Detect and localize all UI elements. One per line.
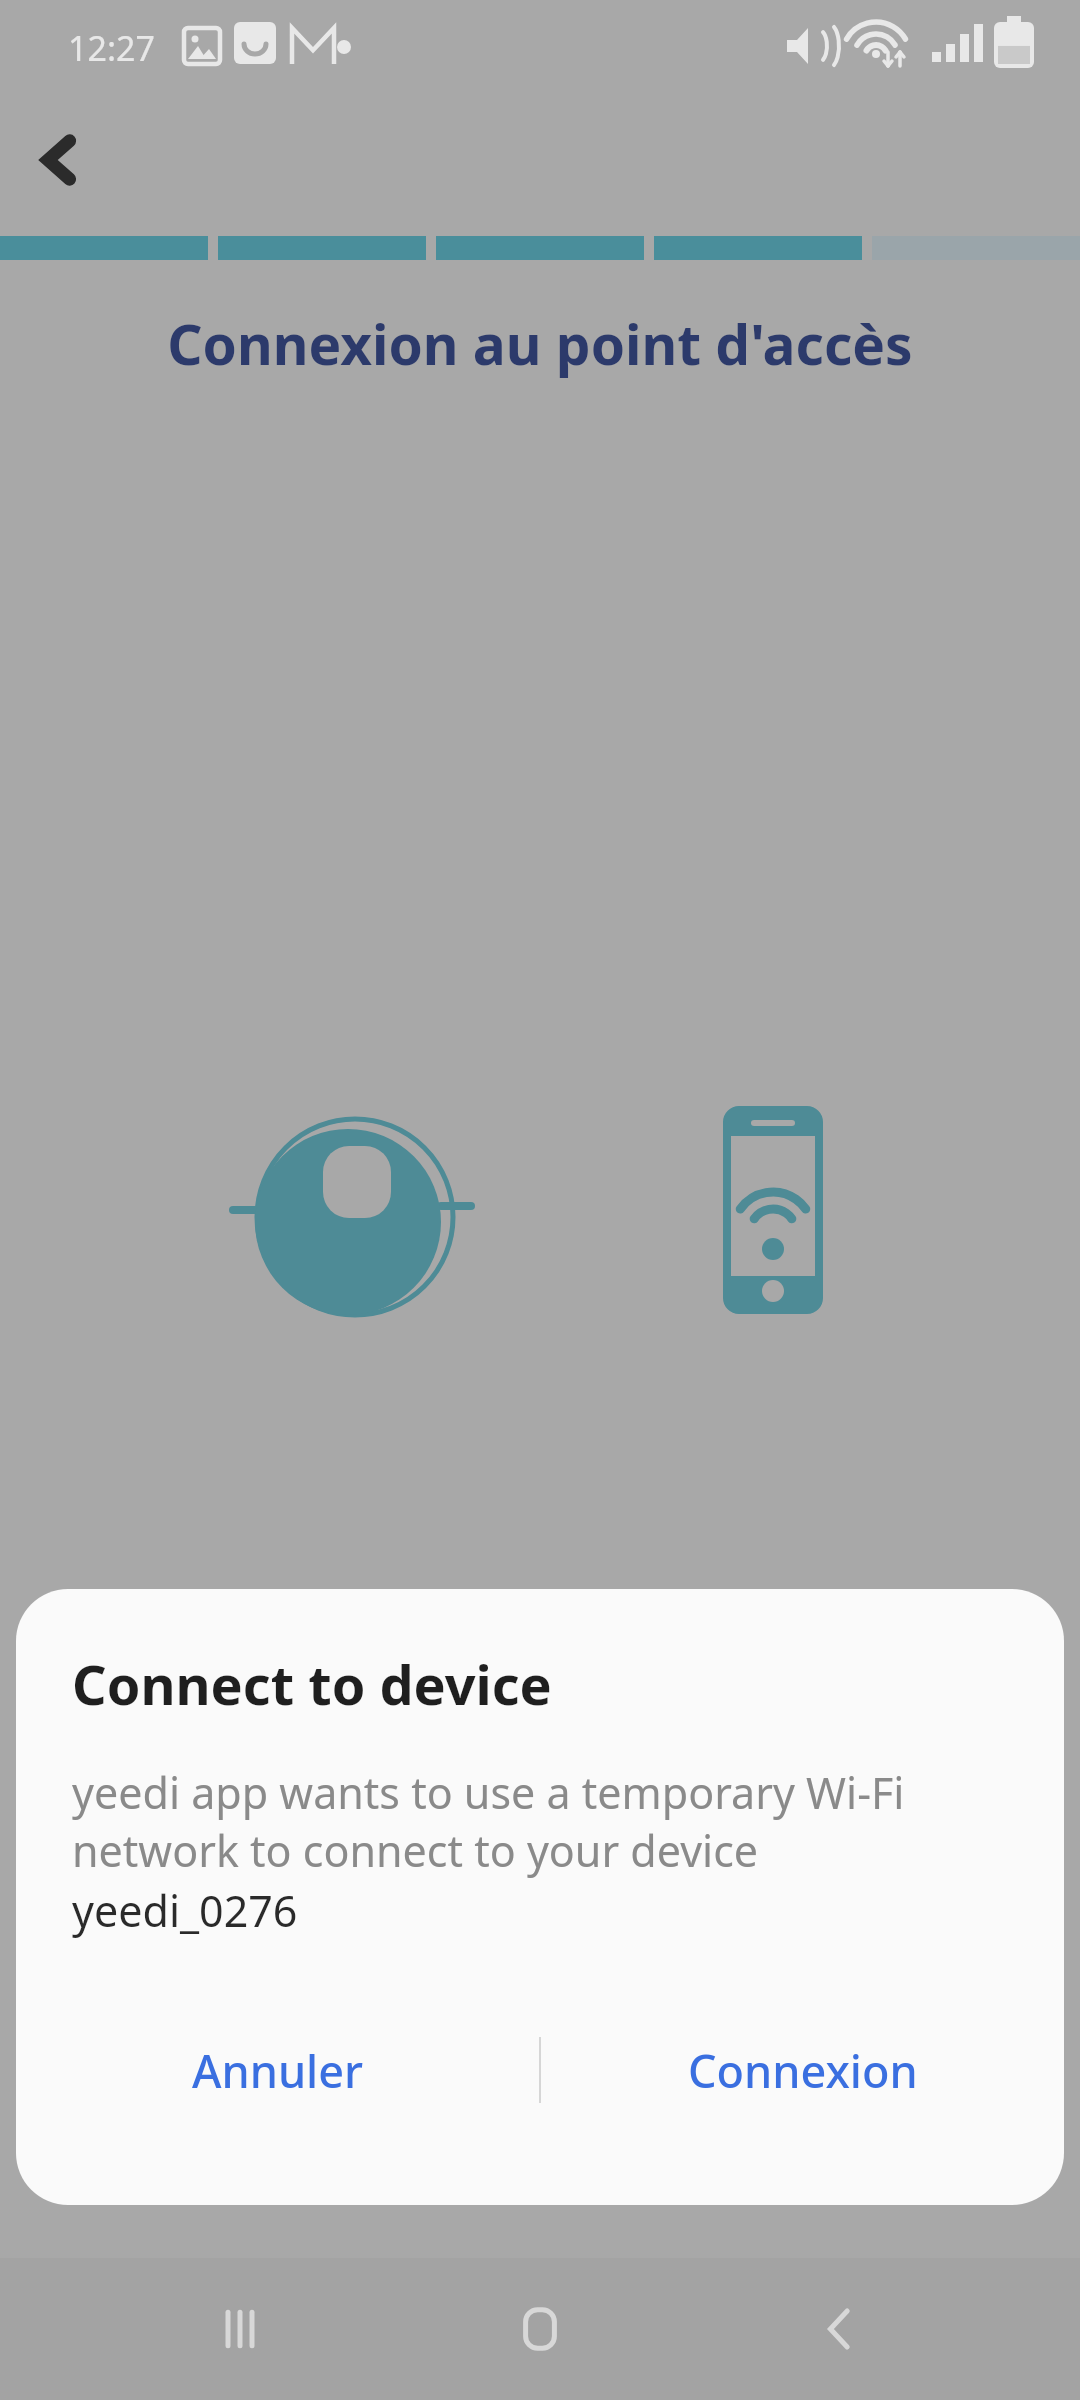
button[interactable]: Home xyxy=(480,2269,600,2389)
staticText: yeedi app wants to use a temporary Wi-Fi… xyxy=(72,1763,905,1879)
staticText: Connexion au point d'accès xyxy=(40,306,1040,381)
staticText: Connect to device xyxy=(72,1647,552,1721)
button[interactable]: Recent apps xyxy=(180,2269,300,2389)
button[interactable]: Annuler xyxy=(16,1995,539,2145)
button[interactable]: Connexion xyxy=(541,1995,1064,2145)
staticText: Connexion xyxy=(688,2040,918,2101)
button[interactable]: Back xyxy=(780,2269,900,2389)
staticText: 12:27 xyxy=(68,25,155,71)
staticText: yeedi_0276 xyxy=(72,1881,298,1940)
button[interactable]: Back xyxy=(8,108,112,212)
staticText: Annuler xyxy=(192,2040,364,2101)
